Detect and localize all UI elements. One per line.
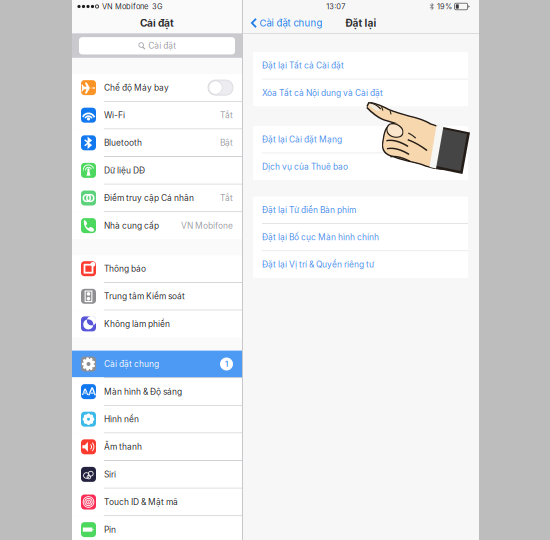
button[interactable]: Cài đặt chung [243, 13, 327, 33]
staticText: Cài đặt chung [259, 17, 322, 29]
button[interactable]: Dịch vụ của Thuê bao [253, 153, 468, 180]
staticText: Điểm truy cập Cá nhân [104, 193, 194, 203]
staticText: Cài đặt [148, 41, 176, 51]
button[interactable]: Âm thanh [72, 433, 242, 460]
staticText: Bật [220, 138, 233, 148]
button[interactable]: Thông báo [72, 255, 242, 282]
staticText: Siri [104, 469, 116, 479]
button[interactable]: Pin [72, 516, 242, 540]
staticText: Touch ID & Mật mã [104, 497, 178, 507]
button[interactable]: Cài đặt chung [72, 351, 242, 377]
button[interactable]: Wi-Fi [72, 102, 242, 129]
staticText: 19% [437, 2, 452, 11]
staticText: VN Mobifone [102, 2, 148, 11]
button[interactable]: Dữ liệu DĐ [72, 157, 242, 184]
staticText: Chế độ Máy bay [104, 82, 169, 93]
staticText: 13:07 [326, 2, 345, 11]
staticText: Âm thanh [104, 442, 142, 452]
staticText: Dữ liệu DĐ [104, 165, 145, 175]
staticText: Đặt lại Tất cả Cài đặt [262, 60, 344, 71]
button[interactable]: Siri [72, 461, 242, 488]
button[interactable]: Đặt lại Cài đặt Mạng [253, 126, 468, 153]
staticText: Pin [104, 524, 116, 535]
staticText: Thông báo [104, 264, 146, 274]
button[interactable]: Đặt lại Tất cả Cài đặt [253, 52, 468, 79]
staticText: Tắt [220, 193, 233, 203]
button[interactable]: Hình nền [72, 406, 242, 433]
button[interactable]: Xóa Tất cả Nội dung và Cài đặt [253, 80, 468, 106]
staticText: Wi-Fi [104, 110, 125, 120]
staticText: Trung tâm Kiểm soát [104, 291, 185, 301]
button[interactable]: Nhà cung cấp [72, 212, 242, 239]
staticText: Màn hình & Độ sáng [104, 386, 182, 397]
button[interactable]: Đặt lại Vị trí & Quyền riêng tư [253, 251, 468, 278]
staticText: Không làm phiền [104, 319, 170, 329]
staticText: VN Mobifone [181, 220, 233, 231]
button[interactable]: Màn hình & Độ sáng [72, 378, 242, 405]
staticText: Đặt lại Bố cục Màn hình chính [262, 232, 379, 242]
staticText: Xóa Tất cả Nội dung và Cài đặt [262, 88, 383, 98]
button[interactable]: Touch ID & Mật mã [72, 489, 242, 515]
staticText: 3G [152, 2, 163, 11]
button[interactable]: Bluetooth [72, 129, 242, 156]
button[interactable]: Chế độ Máy bay [72, 74, 242, 101]
button[interactable]: Trung tâm Kiểm soát [72, 283, 242, 310]
staticText: Đặt lại [345, 17, 376, 29]
staticText: Dịch vụ của Thuê bao [262, 162, 348, 172]
staticText: Hình nền [104, 414, 139, 424]
staticText: 1 [225, 359, 228, 368]
staticText: Cài đặt chung [104, 359, 159, 369]
staticText: Tắt [220, 110, 233, 120]
staticText: Nhà cung cấp [104, 220, 159, 231]
staticText: Đặt lại Vị trí & Quyền riêng tư [262, 259, 374, 270]
staticText: Đặt lại Cài đặt Mạng [262, 134, 342, 145]
button[interactable]: Đặt lại Bố cục Màn hình chính [253, 224, 468, 250]
button[interactable]: Đặt lại Từ điển Bàn phím [253, 197, 468, 223]
staticText: Cài đặt [140, 17, 174, 29]
staticText: Đặt lại Từ điển Bàn phím [262, 205, 356, 215]
button[interactable]: Điểm truy cập Cá nhân [72, 185, 242, 211]
staticText: Bluetooth [104, 138, 142, 148]
button[interactable]: Không làm phiền [72, 310, 242, 337]
